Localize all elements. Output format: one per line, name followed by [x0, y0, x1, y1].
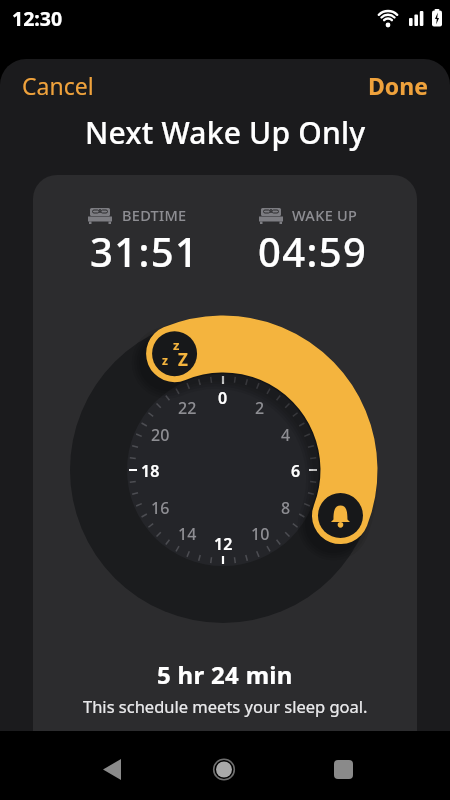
staticText: 8 — [281, 497, 291, 517]
staticText: 4 — [281, 424, 291, 444]
staticText: 0 — [218, 387, 228, 407]
staticText: Next Wake Up Only — [85, 112, 366, 153]
staticText: z — [162, 352, 168, 368]
staticText: 5 hr 24 min — [157, 658, 293, 688]
staticText: 12:30 — [12, 5, 63, 32]
staticText: 04:59 — [258, 224, 368, 274]
staticText: BEDTIME — [122, 205, 187, 225]
staticText: 14 — [178, 523, 197, 543]
button[interactable]: Done — [330, 65, 440, 105]
staticText: 12 — [214, 533, 233, 553]
staticText: 2 — [255, 397, 265, 417]
button[interactable]: Cancel — [10, 65, 120, 105]
button[interactable] — [88, 741, 148, 797]
staticText: 22 — [178, 397, 197, 417]
staticText: 18 — [141, 460, 160, 480]
staticText: WAKE UP — [292, 205, 358, 225]
staticText: Done — [368, 70, 428, 101]
button[interactable] — [149, 328, 201, 380]
staticText: 6 — [291, 460, 301, 480]
staticText: This schedule meets your sleep goal. — [83, 695, 368, 717]
button[interactable] — [194, 741, 254, 797]
staticText: 16 — [151, 497, 170, 517]
staticText: Z — [178, 348, 188, 368]
staticText: Cancel — [22, 70, 94, 101]
button[interactable] — [314, 490, 366, 542]
staticText: 10 — [251, 523, 270, 543]
staticText: 31:51 — [90, 224, 200, 274]
button[interactable] — [304, 741, 364, 797]
staticText: 20 — [151, 424, 170, 444]
staticText: z — [173, 336, 180, 352]
